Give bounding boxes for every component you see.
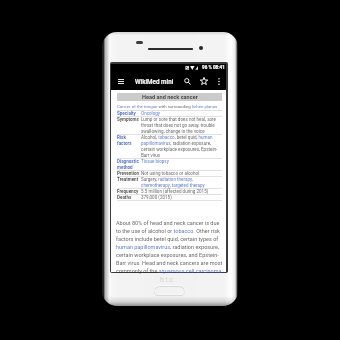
staticText: Frequency [117, 189, 141, 194]
button[interactable]: More options [214, 76, 224, 86]
staticText: Not using tobacco or alcohol [141, 171, 200, 176]
staticText: Prevention [117, 171, 141, 176]
staticText: Specialty [117, 111, 141, 116]
staticText: Deaths [117, 195, 141, 200]
staticText: Head and neck cancer [142, 94, 198, 101]
button[interactable]: WikiMed mini [135, 78, 180, 85]
staticText: Tissue biopsy [141, 159, 169, 164]
staticText: Alcohol, tobacco, betel quid, human papi… [141, 135, 222, 158]
staticText: Oncology [141, 111, 161, 116]
button[interactable]: Navigation menu [118, 79, 124, 84]
staticText: 379,000 (2015) [141, 195, 172, 200]
button[interactable]: Add to favourites [199, 76, 209, 86]
staticText: 5.5 million (affected during 2015) [141, 189, 209, 194]
staticText: Surgery, radiation therapy, chemotherapy… [141, 177, 222, 188]
staticText: Diagnostic method [117, 159, 141, 170]
staticText: WikiMed mini [135, 78, 174, 85]
staticText: Lump or sore that does not heal, sore th… [141, 117, 222, 134]
staticText: Risk factors [117, 135, 141, 146]
staticText: htc [160, 275, 175, 283]
staticText: Symptoms [117, 117, 141, 122]
staticText: Treatment [117, 177, 141, 182]
staticText: About 80% of head and neck cancer is due… [116, 220, 223, 274]
staticText: Cancer of the tongue with surrounding li… [117, 104, 218, 109]
staticText: 96 % 08:41 [202, 65, 225, 70]
button[interactable]: Search [182, 76, 192, 86]
